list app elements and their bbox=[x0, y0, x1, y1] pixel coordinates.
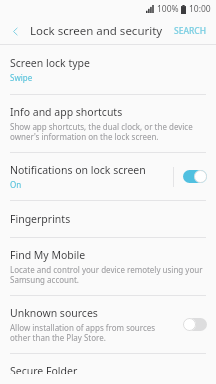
staticText: Lock screen and security bbox=[30, 23, 171, 39]
button[interactable]: SEARCH bbox=[171, 21, 210, 41]
staticText: Locate and control your device remotely … bbox=[10, 264, 206, 285]
staticText: Find My Mobile bbox=[10, 248, 86, 262]
staticText: 10:00 bbox=[189, 3, 211, 15]
button[interactable]: Screen lock type bbox=[0, 45, 216, 94]
staticText: SEARCH bbox=[174, 25, 207, 37]
button[interactable]: Toggle on bbox=[182, 169, 208, 184]
staticText: Show app shortcuts, the dual clock, or t… bbox=[10, 121, 206, 142]
staticText: Screen lock type bbox=[10, 56, 90, 70]
staticText: Swipe bbox=[10, 72, 33, 83]
button[interactable]: Unknown sources bbox=[0, 296, 216, 353]
staticText: Fingerprints bbox=[10, 212, 71, 226]
staticText: Allow installation of apps from sources … bbox=[10, 322, 167, 343]
button[interactable]: Navigate up bbox=[0, 18, 30, 44]
button[interactable]: Find My Mobile bbox=[0, 238, 216, 295]
staticText: On bbox=[10, 179, 22, 190]
button[interactable]: Secure Folder bbox=[0, 354, 216, 384]
staticText: 100% bbox=[157, 3, 179, 15]
button[interactable]: Toggle off bbox=[182, 317, 208, 332]
staticText: Unknown sources bbox=[10, 306, 98, 320]
staticText: Secure Folder bbox=[10, 364, 78, 374]
button[interactable]: Info and app shortcuts bbox=[0, 95, 216, 152]
button[interactable]: Notifications on lock screen bbox=[0, 153, 216, 200]
button[interactable]: Fingerprints bbox=[0, 201, 216, 237]
staticText: Notifications on lock screen bbox=[10, 163, 146, 177]
staticText: Info and app shortcuts bbox=[10, 105, 123, 119]
